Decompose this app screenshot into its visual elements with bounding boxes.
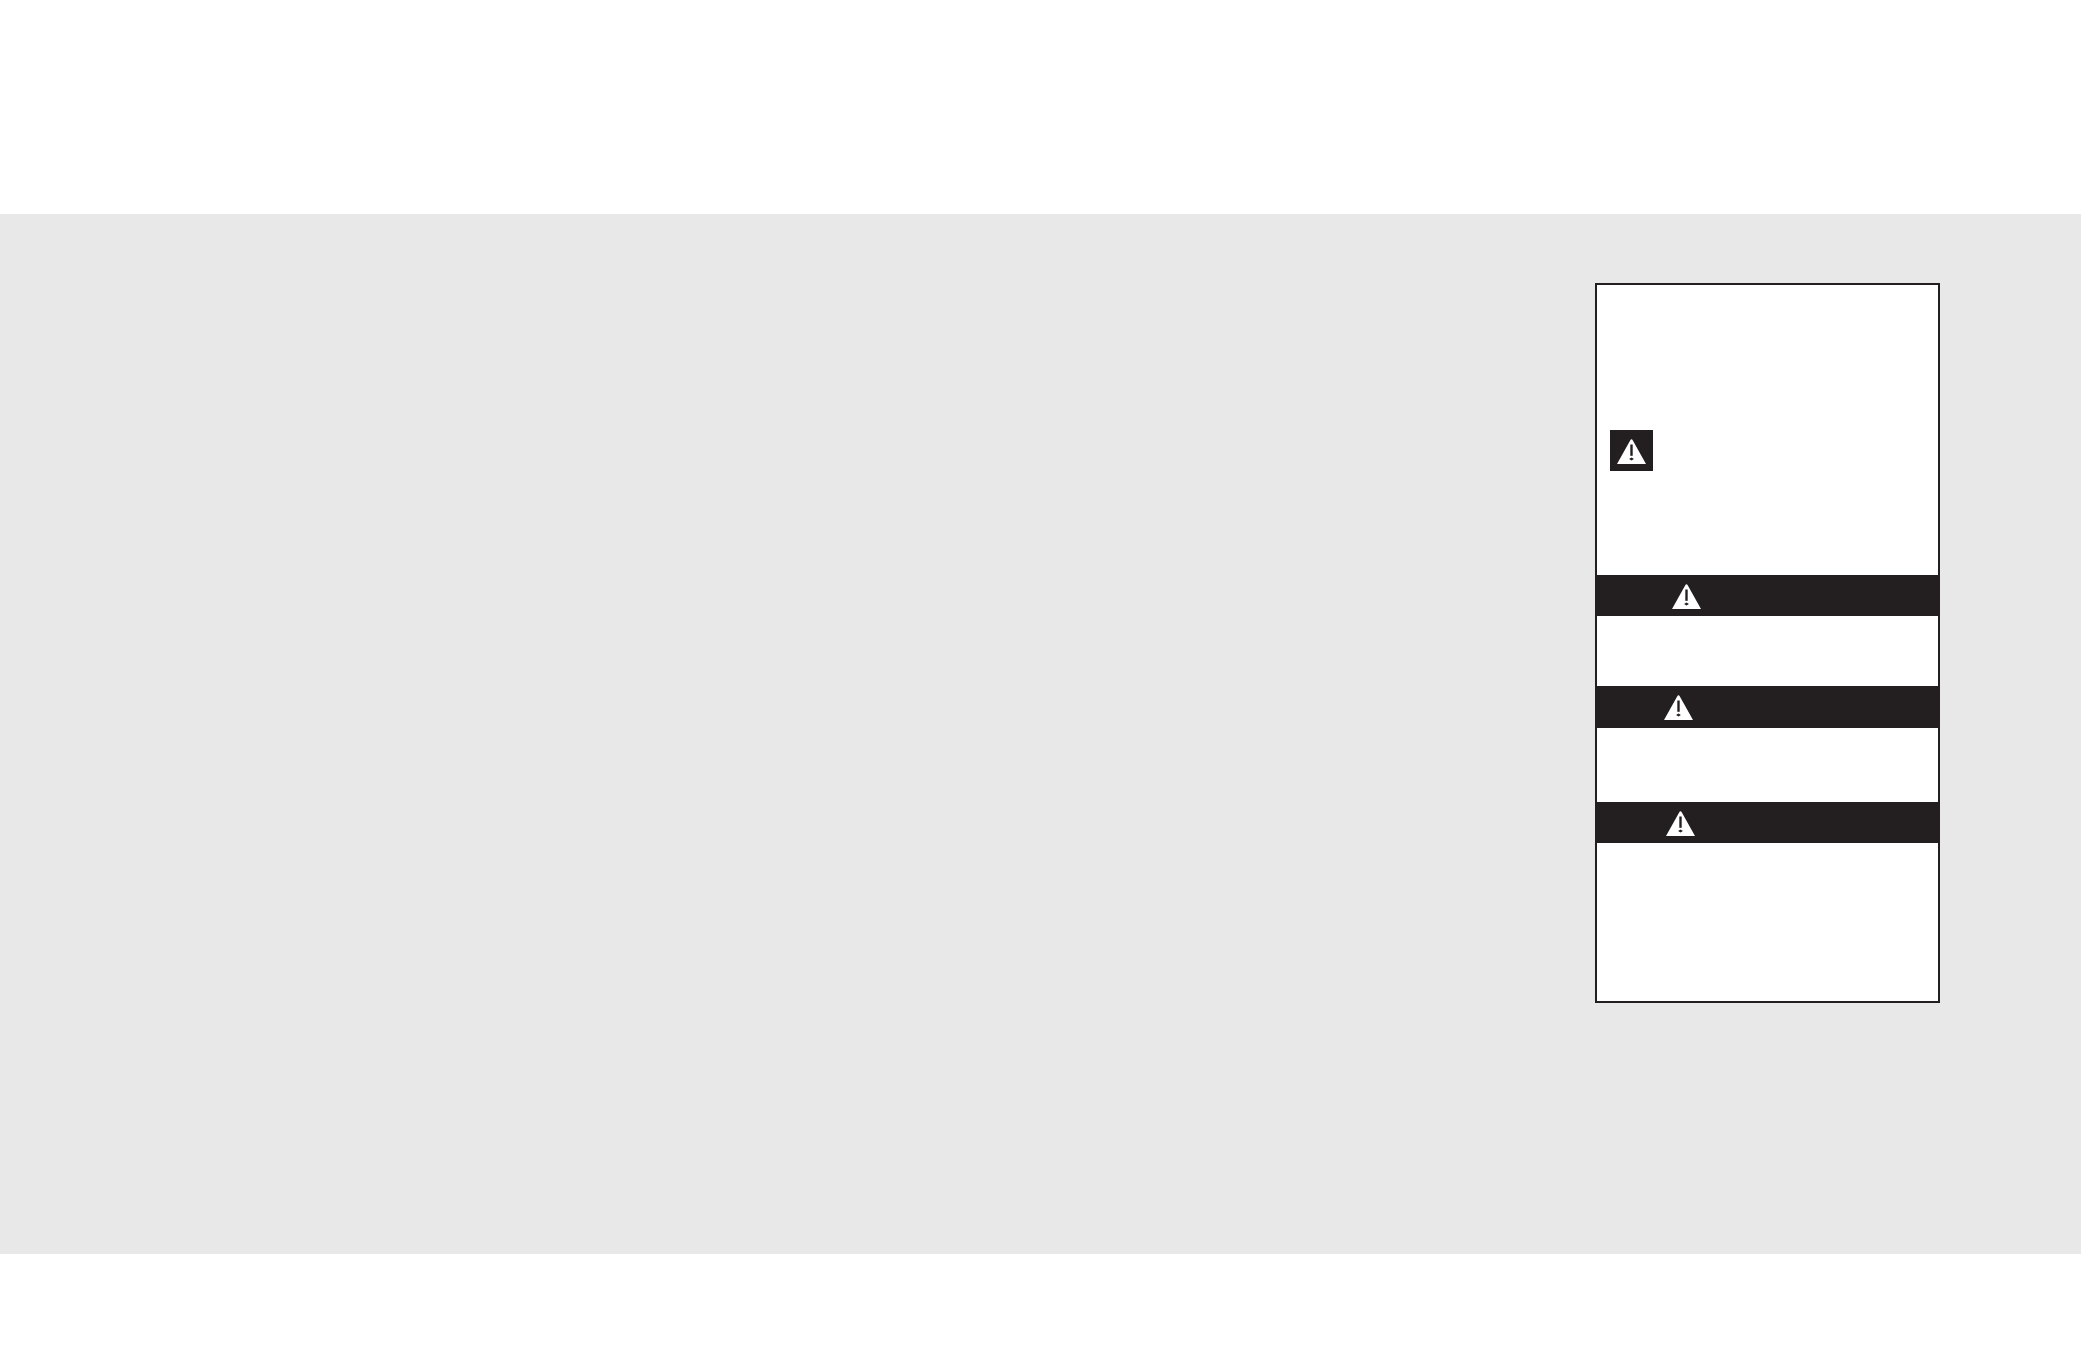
button[interactable]: Warning (1595, 802, 1940, 843)
button[interactable]: Warning (1595, 575, 1940, 616)
button[interactable]: Warning (1595, 686, 1940, 728)
button[interactable]: Warning (1610, 430, 1653, 471)
